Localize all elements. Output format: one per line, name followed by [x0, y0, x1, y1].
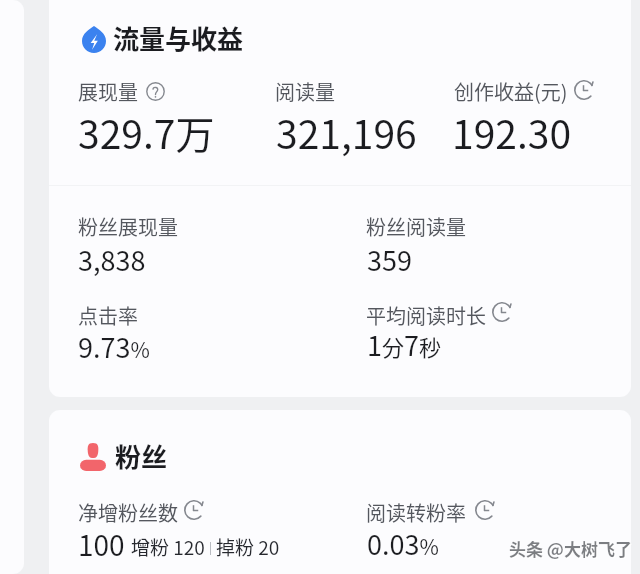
staticText: 阅读量	[275, 77, 335, 106]
button[interactable]	[76, 498, 346, 564]
button[interactable]: 阅读时长更新时间	[492, 302, 512, 322]
button[interactable]	[363, 498, 613, 564]
button[interactable]	[76, 212, 346, 278]
staticText: 阅读转粉率	[366, 498, 466, 527]
staticText: 流量与收益	[113, 19, 244, 57]
button[interactable]	[450, 75, 630, 155]
staticText: 净增粉丝数	[78, 498, 178, 527]
button[interactable]	[363, 300, 613, 366]
staticText: 点击率	[78, 301, 138, 330]
button[interactable]: 收益更新时间	[574, 80, 594, 100]
button[interactable]	[273, 75, 443, 155]
staticText: 展现量	[78, 77, 138, 106]
staticText: 1分7秒	[367, 325, 441, 364]
staticText: 粉丝阅读量	[366, 212, 466, 241]
staticText: 359	[367, 240, 412, 279]
button[interactable]: 展现量说明	[146, 82, 165, 101]
staticText: 100	[78, 524, 125, 565]
staticText: 329.7万	[78, 104, 215, 160]
button[interactable]: 粉丝	[80, 437, 168, 475]
staticText: 粉丝展现量	[78, 212, 178, 241]
staticText: 平均阅读时长	[366, 301, 486, 330]
staticText: 321,196	[276, 104, 417, 160]
staticText: 创作收益(元)	[454, 77, 568, 106]
staticText: 0.03%	[367, 524, 439, 563]
staticText: 增粉 120	[131, 533, 205, 561]
button[interactable]: 粉丝数更新时间	[184, 500, 204, 520]
staticText: 头条 @大树飞了	[509, 536, 632, 561]
button[interactable]: 转粉率更新时间	[475, 500, 495, 520]
staticText: 粉丝	[115, 437, 168, 475]
staticText: 头条 @大树飞了	[510, 537, 633, 562]
staticText: 3,838	[78, 240, 146, 279]
staticText: 192.30	[452, 104, 572, 160]
button[interactable]	[76, 300, 346, 366]
button[interactable]	[76, 75, 256, 155]
button[interactable]	[363, 212, 613, 278]
staticText: 9.73%	[78, 327, 150, 366]
staticText: 掉粉 20	[216, 533, 280, 561]
button[interactable]: 流量与收益	[80, 19, 244, 57]
